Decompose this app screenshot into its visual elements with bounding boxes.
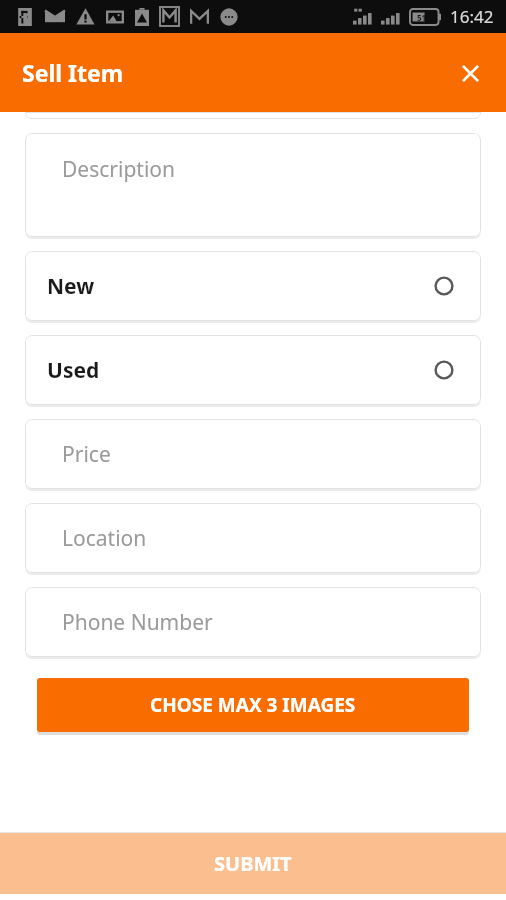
staticText: Price [62,440,111,469]
button[interactable]: CHOSE MAX 3 IMAGES [37,678,469,732]
button[interactable]: Close [448,51,492,95]
button[interactable]: SUBMIT [0,833,506,894]
button[interactable]: Price [25,419,481,489]
staticText: 16:42 [450,5,494,28]
staticText: New [47,272,95,301]
staticText: Phone Number [62,608,213,637]
staticText: Description [62,155,176,184]
staticText: Used [47,356,100,385]
button[interactable]: Location [25,503,481,573]
button[interactable]: Description [25,133,481,237]
staticText: Location [62,524,147,553]
button[interactable]: New [25,251,481,321]
staticText: SUBMIT [214,850,292,877]
staticText: 51% [417,12,434,23]
staticText: Sell Item [22,57,124,88]
button[interactable]: Used [25,335,481,405]
staticText: CHOSE MAX 3 IMAGES [150,692,356,718]
button[interactable]: Phone Number [25,587,481,657]
button[interactable] [25,112,481,119]
